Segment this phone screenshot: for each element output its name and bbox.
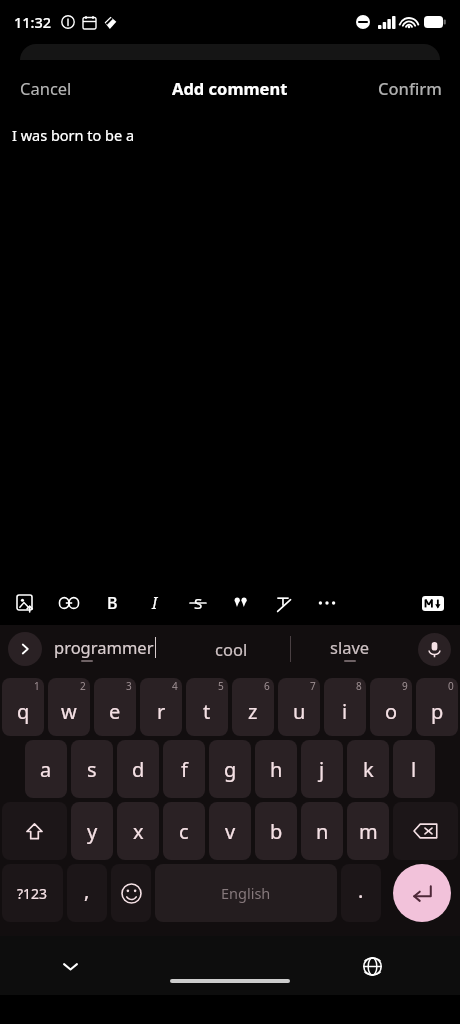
button[interactable]: Insert link bbox=[56, 590, 82, 616]
staticText: e bbox=[109, 698, 121, 725]
button[interactable]: . bbox=[341, 864, 381, 922]
staticText: o bbox=[385, 698, 398, 725]
button[interactable]: f bbox=[163, 740, 205, 798]
button[interactable]: 5 bbox=[186, 678, 228, 736]
staticText: , bbox=[84, 877, 90, 904]
staticText: programmer bbox=[54, 636, 154, 658]
staticText: g bbox=[224, 756, 237, 783]
staticText: B bbox=[107, 592, 118, 614]
staticText: v bbox=[225, 818, 236, 845]
button[interactable]: 4 bbox=[140, 678, 182, 736]
button[interactable]: Enter bbox=[393, 864, 451, 922]
button[interactable]: More options bbox=[314, 590, 340, 616]
staticText: s bbox=[87, 756, 97, 783]
button[interactable]: b bbox=[255, 802, 297, 860]
button[interactable]: 3 bbox=[94, 678, 136, 736]
staticText: b bbox=[270, 818, 283, 845]
button[interactable]: slave bbox=[322, 628, 378, 670]
staticText: h bbox=[270, 756, 283, 783]
staticText: t bbox=[203, 698, 211, 725]
button[interactable]: g bbox=[209, 740, 251, 798]
button[interactable]: Voice input bbox=[418, 633, 451, 666]
button[interactable]: ?123 bbox=[2, 864, 63, 922]
staticText: m bbox=[359, 818, 378, 845]
staticText: p bbox=[431, 698, 444, 725]
button[interactable]: c bbox=[163, 802, 205, 860]
button[interactable]: Insert image bbox=[12, 590, 38, 616]
staticText: English bbox=[221, 883, 271, 903]
button[interactable]: x bbox=[117, 802, 159, 860]
button[interactable]: y bbox=[71, 802, 113, 860]
staticText: l bbox=[411, 756, 417, 783]
button[interactable]: , bbox=[67, 864, 107, 922]
staticText: r bbox=[157, 698, 166, 725]
staticText: I was born to be a bbox=[12, 125, 135, 145]
button[interactable]: 9 bbox=[370, 678, 412, 736]
staticText: z bbox=[248, 698, 258, 725]
button[interactable]: Markdown bbox=[420, 590, 446, 616]
button[interactable]: Shift bbox=[2, 802, 67, 860]
staticText: Cancel bbox=[20, 77, 72, 99]
staticText: w bbox=[61, 698, 77, 725]
staticText: i bbox=[342, 698, 348, 725]
staticText: 2 bbox=[80, 679, 86, 693]
staticText: S bbox=[194, 593, 203, 613]
button[interactable]: Emoji bbox=[111, 864, 151, 922]
button[interactable]: v bbox=[209, 802, 251, 860]
staticText: 7 bbox=[310, 679, 316, 693]
button[interactable]: k bbox=[347, 740, 389, 798]
staticText: f bbox=[181, 756, 188, 783]
staticText: j bbox=[319, 756, 325, 783]
button[interactable]: 1 bbox=[2, 678, 44, 736]
staticText: y bbox=[87, 818, 98, 845]
button[interactable]: d bbox=[117, 740, 159, 798]
staticText: c bbox=[179, 818, 189, 845]
staticText: 8 bbox=[356, 679, 362, 693]
staticText: 0 bbox=[448, 679, 454, 693]
button[interactable]: 0 bbox=[416, 678, 458, 736]
button[interactable]: 8 bbox=[324, 678, 366, 736]
button[interactable]: Clear formatting bbox=[271, 590, 297, 616]
button[interactable]: Cancel bbox=[0, 67, 92, 109]
button[interactable]: Hide keyboard bbox=[50, 946, 90, 986]
staticText: slave bbox=[330, 636, 370, 658]
button[interactable]: Change language bbox=[352, 946, 392, 986]
button[interactable]: 7 bbox=[278, 678, 320, 736]
staticText: q bbox=[17, 698, 30, 725]
staticText: a bbox=[40, 756, 52, 783]
staticText: I bbox=[152, 592, 158, 614]
button[interactable]: Strikethrough bbox=[185, 590, 211, 616]
staticText: 11:32 bbox=[14, 12, 52, 32]
button[interactable]: Confirm bbox=[360, 67, 460, 109]
button[interactable]: programmer bbox=[50, 628, 160, 670]
button[interactable]: Bold bbox=[99, 590, 125, 616]
staticText: 4 bbox=[172, 679, 178, 693]
staticText: ?123 bbox=[17, 884, 48, 903]
staticText: . bbox=[358, 877, 364, 904]
button[interactable]: l bbox=[393, 740, 435, 798]
button[interactable]: 2 bbox=[48, 678, 90, 736]
staticText: 6 bbox=[264, 679, 270, 693]
staticText: x bbox=[133, 818, 144, 845]
button[interactable]: Backspace bbox=[393, 802, 458, 860]
button[interactable]: a bbox=[25, 740, 67, 798]
button[interactable]: 6 bbox=[232, 678, 274, 736]
button[interactable]: English bbox=[155, 864, 337, 922]
button[interactable]: s bbox=[71, 740, 113, 798]
button[interactable]: Italic bbox=[142, 590, 168, 616]
staticText: u bbox=[293, 698, 306, 725]
staticText: Add comment bbox=[172, 77, 288, 99]
staticText: Confirm bbox=[378, 77, 442, 99]
button[interactable]: h bbox=[255, 740, 297, 798]
button[interactable]: Expand suggestions bbox=[8, 632, 42, 666]
staticText: 5 bbox=[218, 679, 224, 693]
button[interactable]: j bbox=[301, 740, 343, 798]
button[interactable]: cool bbox=[205, 630, 258, 668]
staticText: 1 bbox=[34, 679, 40, 693]
staticText: n bbox=[316, 818, 329, 845]
staticText: k bbox=[363, 756, 374, 783]
staticText: 9 bbox=[402, 679, 408, 693]
button[interactable]: m bbox=[347, 802, 389, 860]
button[interactable]: n bbox=[301, 802, 343, 860]
button[interactable]: Quote bbox=[228, 590, 254, 616]
